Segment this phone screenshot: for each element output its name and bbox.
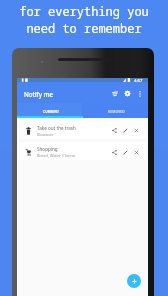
staticText: Shopping xyxy=(37,146,58,152)
button[interactable]: Remove xyxy=(132,125,141,134)
staticText: Take out the trash xyxy=(37,125,76,131)
button[interactable]: Add reminder xyxy=(127,274,141,288)
button[interactable]: Settings xyxy=(121,87,134,100)
button[interactable]: Share xyxy=(110,147,119,156)
staticText: Bread, Water, Cheese xyxy=(37,153,76,158)
staticText: 4:57 xyxy=(134,78,143,82)
button[interactable]: More options xyxy=(134,88,145,99)
staticText: need to remember xyxy=(26,20,142,36)
staticText: Notify me xyxy=(24,90,54,98)
button[interactable]: Shopping xyxy=(19,142,146,160)
button[interactable]: CURRENT xyxy=(17,103,82,118)
staticText: CURRENT xyxy=(43,109,60,113)
staticText: for everything you xyxy=(19,3,149,19)
button[interactable]: Edit xyxy=(121,147,130,156)
button[interactable]: Take out the trash xyxy=(19,120,146,139)
button[interactable]: Remove xyxy=(132,147,141,156)
staticText: REMOVED xyxy=(108,109,125,113)
button[interactable]: Sort xyxy=(108,87,121,100)
button[interactable]: REMOVED xyxy=(82,103,148,118)
button[interactable]: Edit xyxy=(121,125,130,134)
staticText: Biowaste xyxy=(37,132,54,137)
button[interactable]: Share xyxy=(110,125,119,134)
